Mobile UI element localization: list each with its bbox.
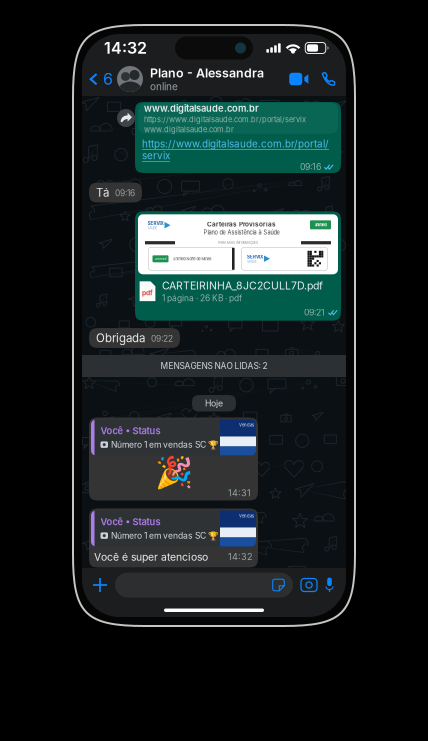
staticText: unimed <box>154 257 166 261</box>
button[interactable]: Forward <box>117 102 135 173</box>
staticText: Número 1 em vendas SC 🏆 <box>111 530 219 541</box>
staticText: Hoje <box>205 398 223 408</box>
button[interactable]: Voice message <box>325 577 343 592</box>
staticText: SAÚDE <box>147 226 157 230</box>
staticText: 🎉 <box>154 454 192 490</box>
staticText: Número 1 em vendas SC 🏆 <box>111 439 219 450</box>
staticText: SERVIX <box>147 221 163 226</box>
staticText: Vendas <box>239 513 254 519</box>
staticText: 1 página · 26 KB · pdf <box>162 293 242 303</box>
button[interactable]: Camera <box>293 578 325 591</box>
staticText: SAÚDE <box>247 260 257 263</box>
staticText: unimed <box>314 222 326 227</box>
button[interactable]: Video call <box>283 62 315 96</box>
staticText: MENSAGENS NÃO LIDAS: 2 <box>160 361 267 371</box>
button[interactable]: Plano - Alessandra <box>117 62 278 96</box>
staticText: 09:21 <box>304 307 325 318</box>
staticText: 09:22 <box>151 334 173 344</box>
staticText: Tá <box>96 186 109 199</box>
staticText: Plano de Assistência à Saúde <box>203 229 279 236</box>
staticText: 6 <box>103 69 113 89</box>
staticText: Carteiras Provisórias <box>207 220 276 228</box>
staticText: 09:16 <box>300 162 321 172</box>
staticText: https://www.digitalsaude.com.br/portal/ <box>142 138 329 150</box>
staticText: Plano - Alessandra <box>150 65 264 80</box>
staticText: www.digitalsaude.com.br <box>144 103 259 114</box>
staticText: Você é super atencioso <box>94 551 208 563</box>
staticText: Unimed Norte de Minas <box>172 256 211 261</box>
staticText: PARA MAIS INFORMAÇÕES <box>218 241 258 245</box>
staticText: Você • Status <box>100 425 160 436</box>
staticText: Obrigada <box>96 331 145 345</box>
staticText: www.digitalsaude.com.br <box>144 125 234 134</box>
button[interactable]: SERVIX <box>135 211 341 321</box>
staticText: Vendas <box>239 422 254 428</box>
staticText: 14:31 <box>228 487 251 498</box>
button[interactable]: Stickers <box>272 578 285 591</box>
staticText: https://www.digitalsaude.com.br/portal/s… <box>144 115 306 124</box>
staticText: online <box>150 80 178 93</box>
staticText: SERVIX <box>247 254 263 260</box>
staticText: CARTEIRINHA_8JC2CULL7D.pdf <box>162 279 323 292</box>
button[interactable]: 6 <box>82 62 117 96</box>
staticText: pdf <box>142 289 153 297</box>
staticText: 14:32 <box>228 551 253 562</box>
staticText: 14:32 <box>104 38 147 58</box>
button[interactable]: Attach <box>85 577 115 593</box>
staticText: 09:16 <box>115 188 135 198</box>
staticText: servix <box>142 150 170 162</box>
button[interactable]: Voice call <box>315 62 346 96</box>
staticText: Você • Status <box>100 516 160 527</box>
